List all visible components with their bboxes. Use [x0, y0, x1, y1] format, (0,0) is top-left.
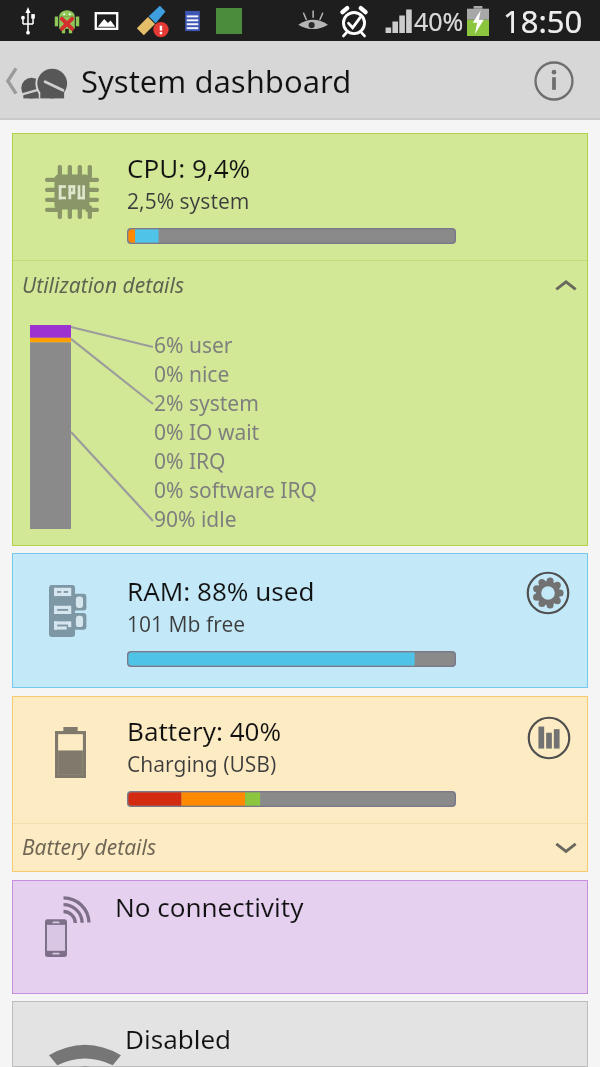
other: Expand battery details	[555, 841, 577, 854]
button[interactable]: Navigate up	[0, 57, 77, 105]
staticText: Battery details	[22, 833, 157, 862]
staticText: 90% idle	[154, 505, 237, 534]
staticText: 0% software IRQ	[154, 476, 317, 505]
button[interactable]: CPU: 9,4%	[13, 134, 587, 260]
staticText: 0% IRQ	[154, 447, 226, 476]
button[interactable]: RAM: 88% used	[13, 554, 587, 687]
staticText: 0% nice	[154, 360, 230, 389]
staticText: RAM: 88% used	[127, 573, 315, 608]
button[interactable]: Battery details	[13, 824, 587, 871]
button[interactable]: Info	[533, 60, 575, 102]
staticText: CPU: 9,4%	[127, 150, 251, 185]
button[interactable]: Battery: 40%	[13, 697, 587, 823]
staticText: 0% IO wait	[154, 418, 260, 447]
staticText: 40%	[414, 4, 464, 38]
staticText: 18:50	[503, 0, 583, 41]
staticText: 2% system	[154, 389, 259, 418]
staticText: Utilization details	[22, 271, 184, 300]
staticText: Disabled	[125, 1021, 232, 1056]
staticText: 101 Mb free	[127, 610, 246, 639]
button[interactable]: Battery history	[527, 716, 571, 760]
button[interactable]: Memory settings	[526, 571, 570, 615]
staticText: No connectivity	[115, 889, 304, 924]
button[interactable]: No connectivity	[13, 881, 587, 993]
button[interactable]: Disabled	[13, 1002, 587, 1066]
staticText: Charging (USB)	[127, 750, 277, 779]
staticText: Battery: 40%	[127, 713, 281, 748]
staticText: 6% user	[154, 331, 233, 360]
staticText: 2,5% system	[127, 187, 250, 216]
button[interactable]: Utilization details	[13, 261, 587, 309]
staticText: System dashboard	[81, 60, 352, 102]
other: Collapse utilization details	[555, 279, 577, 292]
